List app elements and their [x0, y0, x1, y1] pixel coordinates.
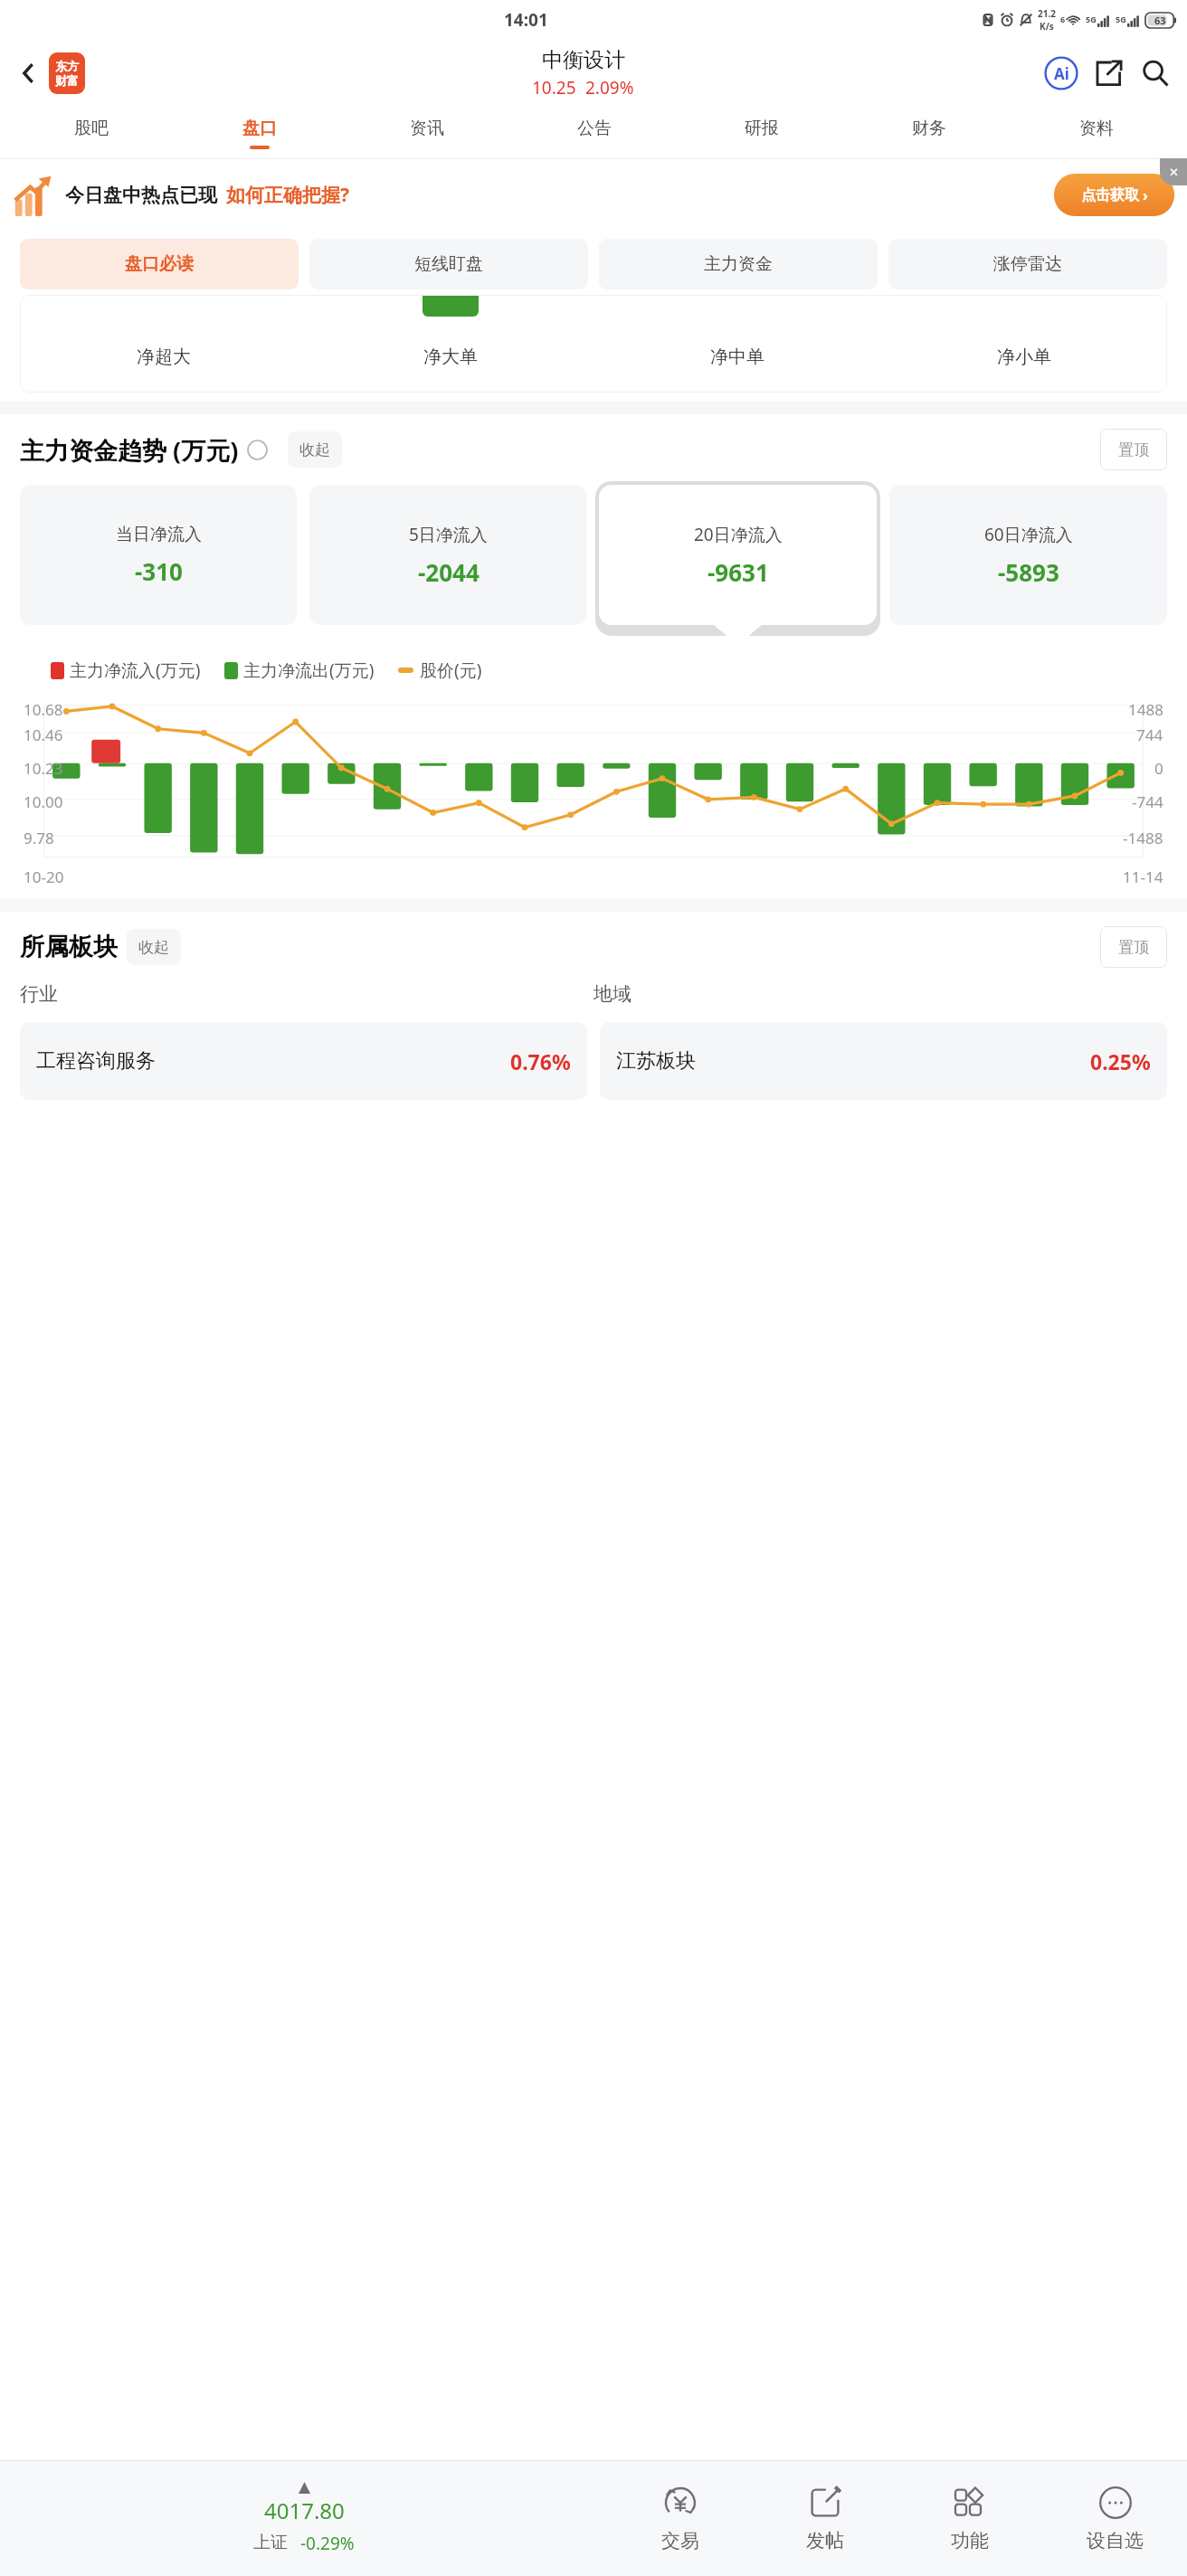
staticText: 10.25: [532, 76, 576, 99]
staticText: 1488: [1128, 699, 1163, 720]
button[interactable]: 资料: [1012, 108, 1180, 158]
staticText: 5G: [1086, 14, 1097, 24]
button[interactable]: 股吧: [7, 108, 176, 158]
button[interactable]: 短线盯盘: [309, 239, 588, 289]
staticText: 净超大: [137, 346, 191, 368]
staticText: -1488: [1123, 828, 1163, 848]
staticText: 主力净流出(万元): [243, 658, 375, 682]
button[interactable]: 收起: [299, 431, 330, 468]
button[interactable]: 研报: [678, 108, 845, 158]
staticText: -310: [135, 555, 183, 587]
button[interactable]: 盘口: [176, 108, 343, 158]
staticText: 5G: [1116, 14, 1126, 24]
button[interactable]: 20日净流入: [599, 485, 877, 625]
button[interactable]: 点击获取: [1054, 174, 1174, 216]
button[interactable]: 置顶: [1100, 926, 1167, 968]
staticText: 交易: [661, 2529, 699, 2552]
button[interactable]: 发帖: [753, 2461, 897, 2576]
button[interactable]: Back: [9, 53, 49, 93]
button[interactable]: 财务: [845, 108, 1012, 158]
staticText: 主力资金: [704, 253, 773, 275]
staticText: 10.00: [24, 791, 63, 812]
staticText: 今日盘中热点已现: [65, 184, 217, 207]
staticText: 资料: [1079, 118, 1114, 139]
button[interactable]: 收起: [138, 929, 169, 965]
button[interactable]: Close: [1160, 158, 1187, 185]
staticText: 744: [1136, 724, 1163, 745]
staticText: 10-20: [24, 867, 64, 887]
staticText: 10.23: [24, 758, 63, 779]
staticText: 净大单: [423, 346, 478, 368]
staticText: 收起: [138, 938, 169, 957]
staticText: 股价(元): [420, 658, 482, 682]
staticText: 行业: [20, 982, 593, 1006]
button[interactable]: 盘口必读: [20, 239, 299, 289]
staticText: 功能: [951, 2529, 989, 2552]
staticText: 主力资金趋势 (万元): [20, 433, 239, 467]
staticText: 14:01: [504, 8, 548, 32]
button[interactable]: 60日净流入: [889, 485, 1167, 625]
staticText: 所属板块: [20, 932, 118, 962]
button[interactable]: 工程咨询服务: [36, 1022, 571, 1100]
staticText: ✕: [1169, 166, 1179, 179]
staticText: 盘口: [242, 118, 277, 139]
staticText: 如何正确把握?: [226, 182, 350, 208]
staticText: 东方: [55, 59, 79, 73]
staticText: 6: [1060, 14, 1066, 24]
staticText: 资讯: [410, 118, 444, 139]
staticText: 0.76%: [510, 1047, 571, 1075]
staticText: -744: [1132, 791, 1163, 812]
button[interactable]: Share: [1089, 54, 1127, 92]
staticText: 11-14: [1123, 867, 1163, 887]
button[interactable]: 净大单: [307, 295, 593, 393]
button[interactable]: 东方财富: [49, 52, 85, 94]
staticText: 设自选: [1087, 2529, 1144, 2552]
staticText: 60日净流入: [984, 523, 1073, 546]
button[interactable]: 净中单: [593, 295, 880, 393]
staticText: 10.68: [24, 699, 63, 720]
staticText: 20日净流入: [694, 523, 783, 546]
button[interactable]: 功能: [897, 2461, 1042, 2576]
button[interactable]: 设自选: [1042, 2461, 1187, 2576]
button[interactable]: 当日净流入: [20, 485, 297, 625]
staticText: 工程咨询服务: [36, 1048, 156, 1074]
staticText: 4017.80: [264, 2495, 345, 2525]
staticText: 短线盯盘: [414, 253, 483, 275]
button[interactable]: 今日盘中热点已现: [13, 158, 1174, 232]
staticText: -0.29%: [300, 2532, 355, 2555]
button[interactable]: 资讯: [343, 108, 510, 158]
button[interactable]: 净小单: [880, 295, 1167, 393]
staticText: -9631: [707, 556, 769, 588]
staticText: 盘口必读: [125, 253, 194, 275]
staticText: 主力净流入(万元): [70, 658, 201, 682]
staticText: 0: [1154, 758, 1163, 779]
staticText: 中衡设计: [542, 47, 625, 73]
staticText: ›: [1143, 185, 1148, 205]
button[interactable]: 4017.80: [0, 2461, 608, 2576]
staticText: 江苏板块: [616, 1048, 696, 1074]
button[interactable]: Search: [1136, 54, 1174, 92]
staticText: 地域: [593, 982, 1167, 1006]
staticText: 9.78: [24, 828, 54, 848]
button[interactable]: 涨停雷达: [888, 239, 1167, 289]
button[interactable]: 净超大: [20, 295, 307, 393]
staticText: 涨停雷达: [993, 253, 1062, 275]
staticText: 置顶: [1118, 440, 1149, 459]
staticText: 21.2: [1038, 7, 1056, 20]
button[interactable]: 主力资金: [599, 239, 878, 289]
staticText: 5日净流入: [409, 523, 488, 546]
button[interactable]: 公告: [510, 108, 678, 158]
staticText: 当日净流入: [116, 524, 202, 545]
button[interactable]: AI: [1042, 54, 1080, 92]
button[interactable]: 5日净流入: [309, 485, 586, 625]
staticText: 股吧: [74, 118, 109, 139]
staticText: Ai: [1054, 63, 1069, 84]
button[interactable]: 置顶: [1100, 429, 1167, 470]
button[interactable]: 江苏板块: [616, 1022, 1151, 1100]
staticText: 财富: [55, 73, 79, 88]
button[interactable]: 交易: [608, 2461, 753, 2576]
staticText: 发帖: [806, 2529, 844, 2552]
staticText: 63: [1154, 14, 1166, 27]
staticText: 上证: [253, 2532, 288, 2553]
staticText: K/s: [1040, 20, 1054, 33]
